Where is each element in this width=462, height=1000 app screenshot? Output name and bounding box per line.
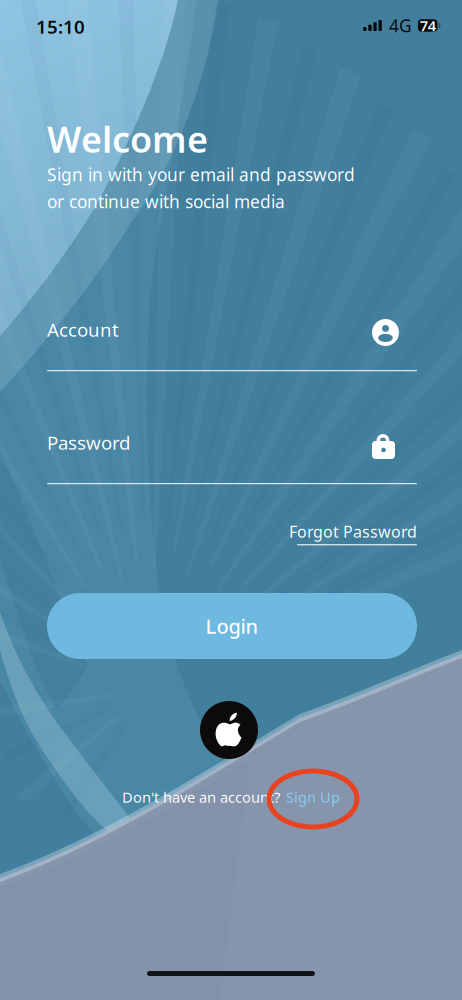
staticText: Account bbox=[47, 317, 119, 342]
staticText: or continue with social media bbox=[47, 190, 285, 213]
staticText: Welcome bbox=[47, 115, 208, 163]
staticText: Sign in with your email and password bbox=[47, 163, 355, 186]
staticText: Login bbox=[205, 613, 258, 639]
staticText: 4G bbox=[389, 14, 412, 37]
staticText: Forgot Password bbox=[289, 521, 417, 542]
staticText: Sign Up bbox=[286, 787, 340, 807]
button[interactable]: Forgot Password bbox=[289, 521, 417, 545]
button[interactable]: Sign Up bbox=[286, 787, 340, 807]
staticText: Password bbox=[47, 430, 130, 455]
button[interactable]: Login bbox=[47, 593, 417, 659]
staticText: Don't have an account? bbox=[122, 787, 280, 807]
staticText: 15:10 bbox=[36, 14, 85, 39]
button[interactable]: Sign in with Apple bbox=[200, 701, 258, 759]
staticText: 74 bbox=[420, 16, 436, 35]
